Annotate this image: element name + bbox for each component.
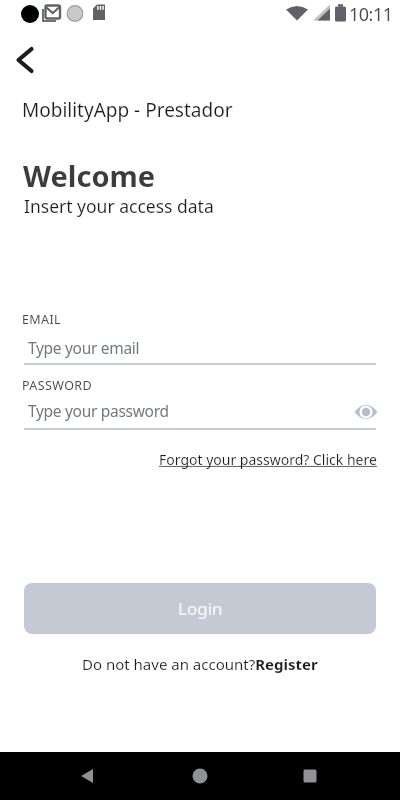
button[interactable]: Login <box>24 583 376 634</box>
button[interactable] <box>63 752 111 800</box>
button[interactable] <box>1 37 49 85</box>
button[interactable]: Forgot your password? Click here <box>159 450 377 469</box>
staticText: 10:11 <box>349 2 393 27</box>
button[interactable] <box>286 752 334 800</box>
staticText: Type your password <box>28 400 169 421</box>
button[interactable]: Do not have an account?Register <box>82 654 318 674</box>
staticText: Type your email <box>28 337 140 358</box>
staticText: PASSWORD <box>22 377 93 394</box>
staticText: MobilityApp - Prestador <box>22 97 233 123</box>
staticText: Welcome <box>23 156 156 195</box>
button[interactable] <box>176 752 224 800</box>
button[interactable] <box>354 400 378 424</box>
staticText: Login <box>178 597 223 620</box>
staticText: Insert your access data <box>24 194 214 218</box>
staticText: EMAIL <box>22 311 62 328</box>
